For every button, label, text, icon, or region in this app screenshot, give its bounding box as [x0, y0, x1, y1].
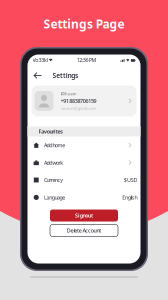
staticText: Delete Account: [67, 227, 101, 234]
staticText: +91 8838706159: [60, 97, 97, 105]
staticText: Settings Page: [44, 16, 124, 32]
button[interactable]: IOS user: [27, 85, 140, 126]
button[interactable]: Signout: [50, 209, 118, 221]
staticText: $ USD: [124, 176, 137, 184]
button[interactable]: Language: [27, 189, 140, 206]
staticText: iosuser@gmail.com: [60, 105, 96, 111]
staticText: IOS user: [60, 91, 76, 96]
staticText: Settings: [52, 71, 78, 80]
button[interactable]: Add home: [27, 136, 140, 154]
staticText: 12:36 PM: [77, 56, 96, 64]
staticText: Add home: [44, 142, 65, 149]
staticText: Add work: [44, 159, 63, 166]
button[interactable]: Delete Account: [50, 224, 118, 236]
staticText: English: [122, 194, 137, 201]
button[interactable]: Add work: [27, 154, 140, 171]
staticText: Vo 33kl: [32, 56, 48, 64]
button[interactable]: Back: [30, 68, 44, 83]
staticText: Currency: [44, 176, 63, 184]
staticText: Favourites: [38, 128, 63, 135]
staticText: Language: [44, 194, 65, 201]
button[interactable]: Currency: [27, 171, 140, 189]
staticText: Signout: [75, 212, 93, 219]
